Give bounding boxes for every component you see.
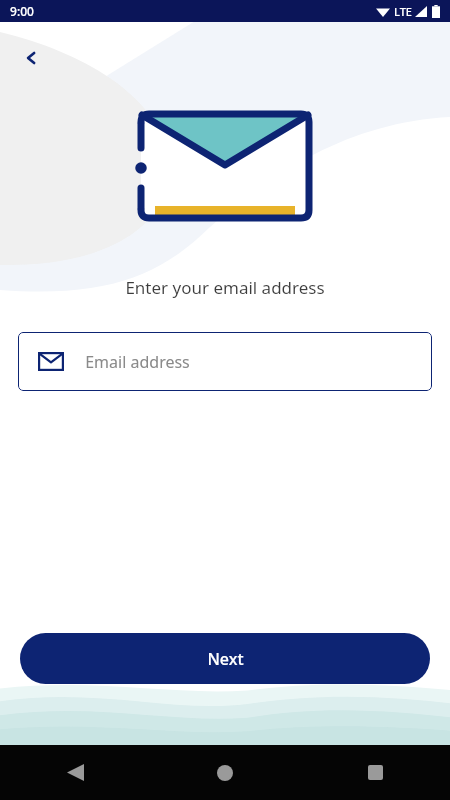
staticText: 9:00 xyxy=(10,3,34,19)
button[interactable]: Home xyxy=(150,745,300,800)
button[interactable]: Email address xyxy=(18,332,432,391)
staticText: Enter your email address xyxy=(125,276,325,299)
button[interactable]: Back xyxy=(0,745,150,800)
staticText: Email address xyxy=(85,351,190,373)
staticText: LTE xyxy=(394,4,412,19)
button[interactable]: Next xyxy=(20,633,430,684)
button[interactable]: Recent apps xyxy=(300,745,450,800)
button[interactable]: Back xyxy=(12,38,52,78)
staticText: Next xyxy=(207,648,244,670)
